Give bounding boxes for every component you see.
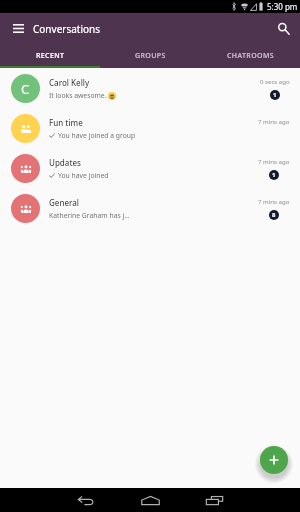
staticText: 5:30 pm [267,1,298,12]
button[interactable]: RECENT [0,44,100,68]
staticText: Fun time [49,117,83,128]
button[interactable]: Updates [0,148,300,188]
staticText: It looks awesome. [49,91,107,100]
staticText: 0 secs ago [260,77,290,85]
staticText: 1 [272,171,276,179]
staticText: Updates [49,157,81,168]
staticText: Conversations [33,22,101,36]
staticText: 7 mins ago [258,157,290,165]
staticText: CHATROOMS [227,51,274,61]
button[interactable]: New conversation [260,446,288,474]
staticText: 1 [273,91,277,99]
button[interactable]: Fun time [0,108,300,148]
button[interactable]: Menu [0,13,36,44]
staticText: You have joined [58,171,109,180]
button[interactable]: Recent apps [182,488,246,512]
staticText: 8 [272,211,276,219]
staticText: 7 mins ago [258,197,290,205]
staticText: Carol Kelly [49,77,90,88]
button[interactable]: Search [268,13,300,44]
button[interactable]: Home [118,488,182,512]
staticText: 7 mins ago [258,117,290,125]
staticText: RECENT [36,51,65,61]
staticText: You have joined a group [58,131,136,140]
staticText: C [21,80,30,98]
staticText: GROUPS [135,51,166,61]
staticText: General [49,197,79,208]
button[interactable]: GROUPS [100,44,200,68]
button[interactable]: C [0,68,300,108]
staticText: Katherine Graham has j... [49,211,130,220]
button[interactable]: CHATROOMS [200,44,300,68]
button[interactable]: General [0,188,300,228]
button[interactable]: Back [54,488,118,512]
